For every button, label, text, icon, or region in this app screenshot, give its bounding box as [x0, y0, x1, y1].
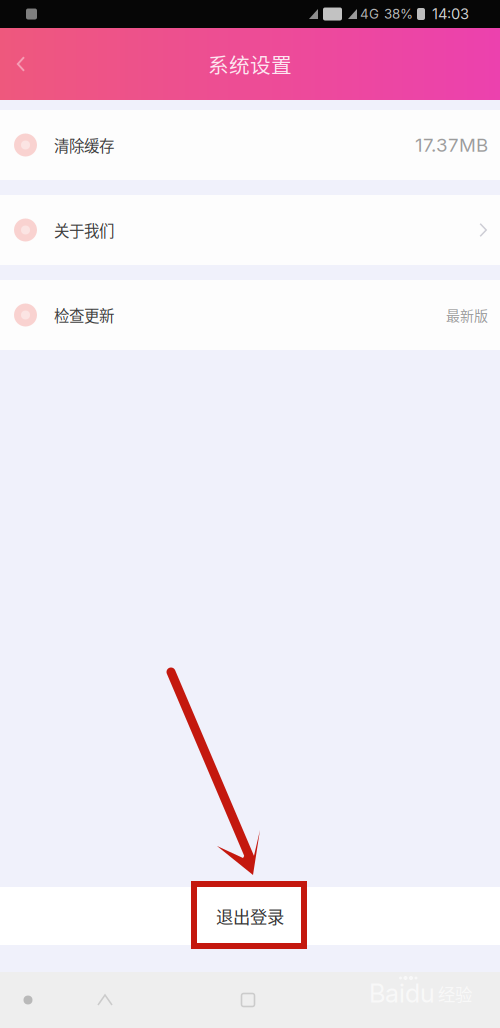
staticText: 14:03 — [432, 5, 469, 23]
button[interactable]: 清除缓存 — [0, 110, 500, 180]
staticText: 退出登录 — [216, 903, 284, 929]
staticText: 38% — [384, 6, 413, 22]
staticText: 检查更新 — [54, 304, 114, 326]
staticText: Baidu — [369, 978, 435, 1009]
button[interactable]: 最近任务 — [220, 972, 276, 1028]
button[interactable]: 检查更新 — [0, 280, 500, 350]
staticText: 最新版 — [446, 305, 488, 325]
button[interactable]: 主页 — [77, 972, 133, 1028]
staticText: 17.37MB — [415, 134, 488, 156]
staticText: 经验 — [438, 981, 472, 1006]
staticText: 4G — [360, 6, 379, 22]
button[interactable]: 关于我们 — [0, 195, 500, 265]
staticText: 清除缓存 — [54, 134, 114, 156]
button[interactable]: 返回 — [0, 972, 56, 1028]
button[interactable]: 返回 — [0, 38, 42, 90]
button[interactable]: 退出登录 — [0, 887, 500, 945]
staticText: 关于我们 — [54, 219, 114, 241]
staticText: 系统设置 — [208, 49, 292, 79]
